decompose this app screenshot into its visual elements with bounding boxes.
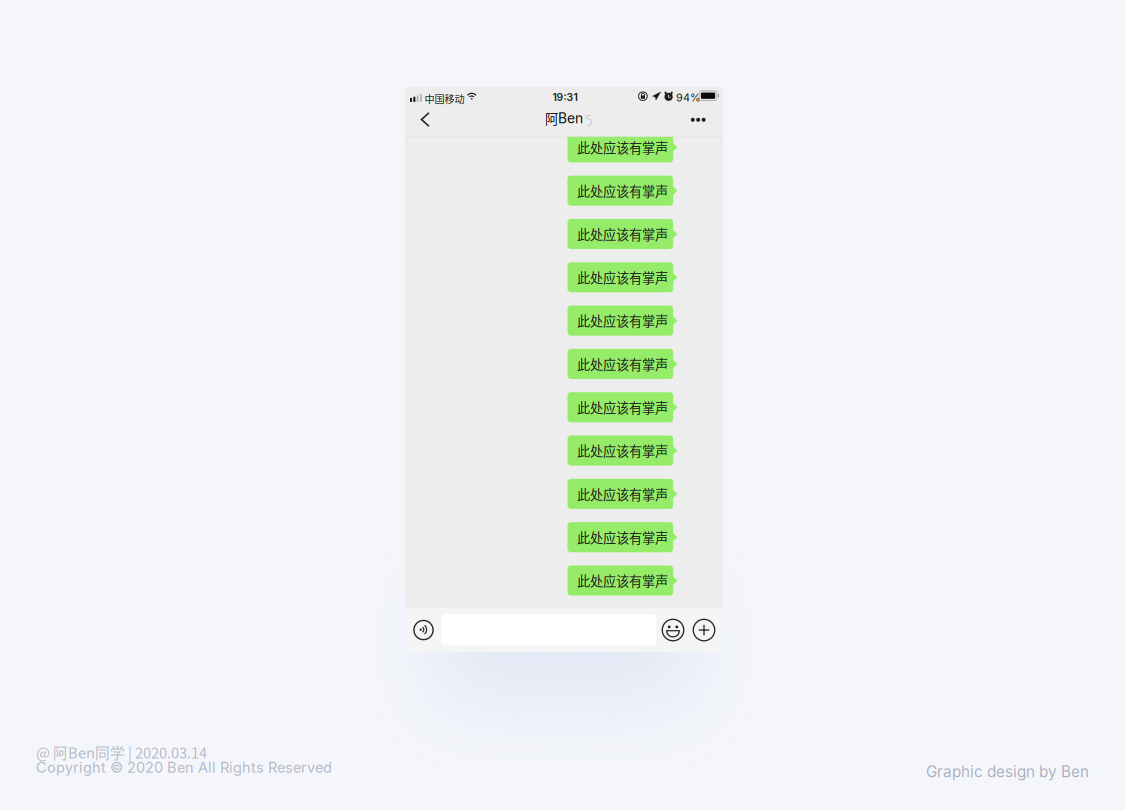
- staticText: 此处应该有掌声: [577, 138, 668, 157]
- staticText: 此处应该有掌声: [577, 224, 668, 243]
- staticText: Ben: [558, 110, 583, 127]
- button[interactable]: More options: [681, 106, 715, 133]
- staticText: 此处应该有掌声: [577, 354, 668, 373]
- staticText: 此处应该有掌声: [577, 181, 668, 200]
- staticText: 此处应该有掌声: [577, 528, 668, 547]
- staticText: 此处应该有掌声: [577, 484, 668, 503]
- staticText: 此处应该有掌声: [577, 571, 668, 590]
- staticText: 此处应该有掌声: [577, 398, 668, 417]
- staticText: Copyright © 2020 Ben All Rights Reserved: [36, 759, 332, 776]
- staticText: 此处应该有掌声: [577, 311, 668, 330]
- button[interactable]: Emoji: [658, 608, 688, 652]
- staticText: 此处应该有掌声: [577, 441, 668, 460]
- staticText: 此处应该有掌声: [577, 268, 668, 287]
- button[interactable]: Back: [410, 106, 440, 133]
- button[interactable]: Voice message: [407, 608, 440, 652]
- staticText: Graphic design by Ben: [926, 762, 1089, 781]
- staticText: 19:31: [552, 91, 577, 103]
- button[interactable]: More: [689, 608, 719, 652]
- staticText: 94%: [676, 91, 701, 104]
- staticText: 阿: [545, 109, 558, 128]
- staticText: @ 阿Ben同学 | 2020.03.14: [36, 741, 207, 763]
- staticText: 中国移动: [425, 91, 465, 106]
